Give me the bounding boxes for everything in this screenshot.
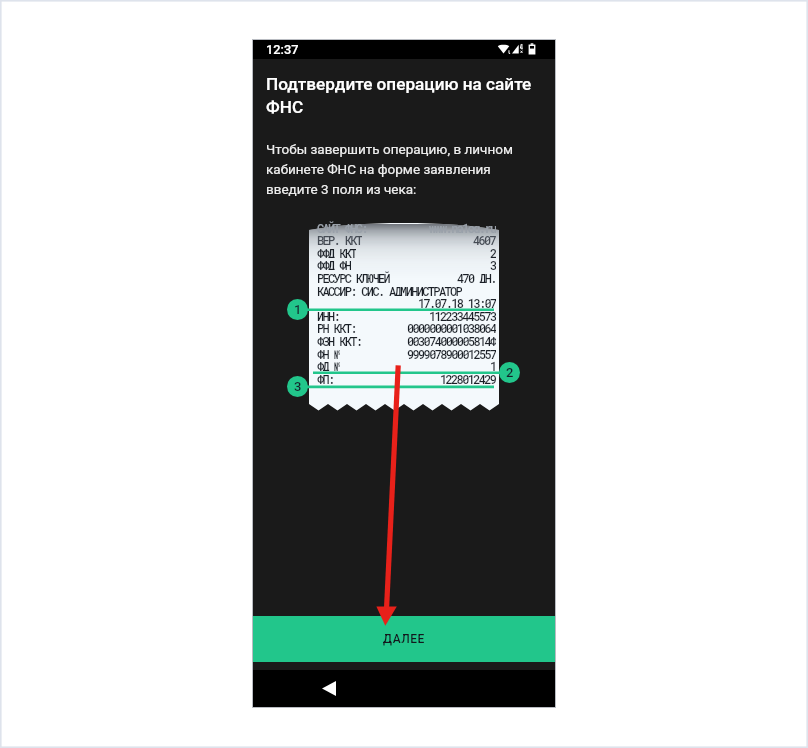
staticText: 9999078900012557 [407, 346, 496, 359]
staticText: 0000000001038064 [407, 320, 496, 333]
staticText: 1 [490, 358, 496, 371]
staticText: 1228012429 [440, 371, 496, 384]
staticText: 12:37 [266, 42, 299, 57]
staticText: 4607 [473, 232, 496, 245]
staticText: ФЗН ККТ: [317, 333, 362, 346]
staticText: ФП: [317, 371, 334, 384]
staticText: ФФД ККТ [317, 245, 356, 258]
button[interactable]: ДАЛЕЕ [253, 616, 555, 662]
staticText: 112233445573 [429, 308, 496, 321]
staticText: РН ККТ: [317, 320, 356, 333]
staticText: ФФД ФН [317, 257, 351, 270]
staticText: КАССИР: СИС. АДМИНИСТРАТОР [317, 283, 462, 296]
staticText: САЙТ ФНС: [317, 220, 367, 233]
staticText: 17.07.18 13:07 [418, 295, 496, 308]
staticText: 2 [506, 365, 514, 380]
staticText: 3 [490, 257, 496, 270]
staticText: РЕСУРС КЛЮЧЕЙ [317, 270, 390, 283]
staticText: ИНН: [317, 308, 340, 321]
staticText: ФН № [317, 346, 340, 359]
staticText: ВЕР. ККТ [317, 232, 362, 245]
staticText: ДАЛЕЕ [383, 632, 425, 646]
staticText: 003074000005814Ф [407, 333, 496, 346]
staticText: www.na1og.ru [429, 220, 496, 233]
staticText: 1 [294, 302, 302, 317]
staticText: 3 [294, 379, 302, 394]
staticText: ФД № [317, 358, 340, 371]
staticText: Подтвердите операцию на сайте ФНС [266, 74, 545, 117]
staticText: Чтобы завершить операцию, в личном кабин… [266, 141, 515, 197]
staticText: 2 [490, 245, 496, 258]
staticText: 470 ДН. [457, 270, 496, 283]
button[interactable]: Back [309, 670, 349, 707]
